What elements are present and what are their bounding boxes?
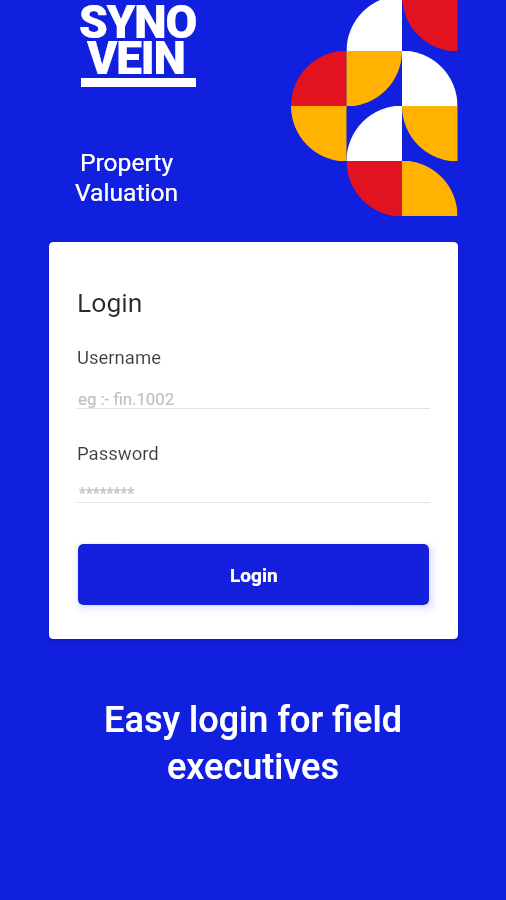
staticText: SYNO (79, 0, 196, 49)
staticText: VEIN (87, 31, 185, 85)
staticText: Username (77, 347, 161, 369)
button[interactable]: Username (77, 342, 430, 409)
button[interactable]: Login (78, 544, 429, 605)
staticText: eg :- fin.1002 (78, 389, 175, 409)
staticText: Property Valuation (44, 148, 209, 207)
staticText: Easy login for field executives (48, 699, 458, 788)
staticText: Login (77, 287, 143, 318)
button[interactable]: Password (77, 438, 430, 504)
staticText: Password (77, 443, 159, 465)
other: Decorative pattern (0, 0, 506, 900)
staticText: Login (230, 564, 278, 586)
staticText: ******** (79, 484, 135, 503)
